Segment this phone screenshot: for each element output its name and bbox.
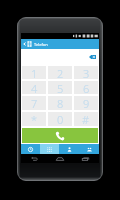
button[interactable]: 0 xyxy=(48,112,72,126)
button[interactable]: 5 xyxy=(48,81,72,94)
button[interactable]: 9 xyxy=(74,96,98,110)
staticText: * xyxy=(31,112,38,126)
button[interactable]: Back xyxy=(21,39,27,49)
button[interactable]: * xyxy=(22,112,46,126)
staticText: Telefon xyxy=(34,42,48,47)
button[interactable]: 8 xyxy=(48,96,72,110)
button[interactable]: 2 xyxy=(48,66,72,79)
staticText: # xyxy=(82,112,90,126)
staticText: 0 xyxy=(57,112,64,126)
staticText: 7 xyxy=(31,96,38,110)
staticText: 9 xyxy=(83,96,90,110)
staticText: 4 xyxy=(31,81,38,94)
button[interactable]: Call xyxy=(22,128,98,143)
button[interactable]: 4 xyxy=(22,81,46,94)
button[interactable]: 6 xyxy=(74,81,98,94)
button[interactable]: Home xyxy=(47,154,73,163)
button[interactable]: 3 xyxy=(74,66,98,79)
staticText: 5 xyxy=(57,81,64,94)
button[interactable]: # xyxy=(74,112,98,126)
staticText: 3 xyxy=(83,66,90,79)
button[interactable]: Recent calls xyxy=(21,144,40,154)
button[interactable]: 7 xyxy=(22,96,46,110)
button[interactable]: Backspace xyxy=(89,55,96,59)
staticText: 8 xyxy=(57,96,64,110)
button[interactable]: Favorites xyxy=(79,144,99,154)
staticText: 1 xyxy=(31,66,38,79)
button[interactable]: Recent apps xyxy=(73,154,99,163)
staticText: 2 xyxy=(57,66,64,79)
button[interactable]: Back xyxy=(21,154,47,163)
button[interactable]: Dialpad xyxy=(40,144,59,154)
staticText: 6 xyxy=(83,81,90,94)
button[interactable]: 1 xyxy=(22,66,46,79)
button[interactable]: Contacts xyxy=(59,144,79,154)
